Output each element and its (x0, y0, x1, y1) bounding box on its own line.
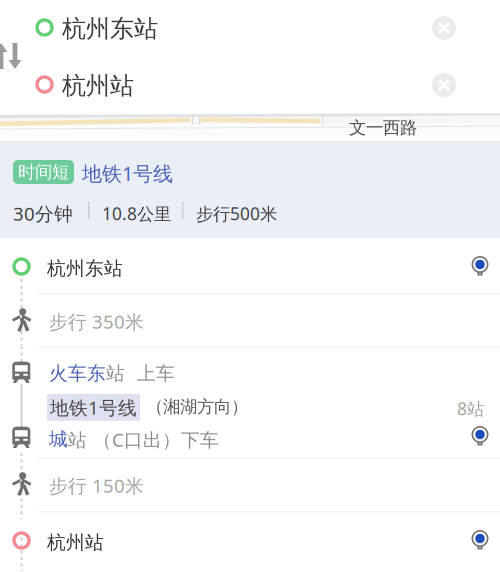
staticText: 杭州东站 (62, 14, 158, 43)
staticText: 8站 (457, 397, 484, 420)
staticText: （湘湖方向） (146, 396, 248, 417)
staticText: 文一西路 (349, 117, 417, 138)
staticText: 火车东 (49, 362, 106, 385)
staticText: 步行 150米 (49, 473, 144, 498)
button[interactable]: Clear (422, 6, 466, 50)
button[interactable]: 步行 350米 (0, 294, 500, 346)
button[interactable]: 杭州站 (0, 512, 500, 567)
staticText: 杭州东站 (47, 257, 123, 280)
staticText: 10.8公里 (102, 202, 171, 225)
button[interactable]: 杭州东站 (0, 0, 500, 56)
button[interactable]: Show on map (464, 249, 496, 285)
staticText: 杭州站 (47, 531, 104, 554)
staticText: 城 (49, 428, 68, 451)
staticText: 时间短 (18, 161, 69, 183)
button[interactable]: Swap origin and destination (0, 43, 20, 69)
staticText: 站 （C口出）下车 (68, 427, 219, 452)
button[interactable]: 杭州东站 (0, 238, 500, 293)
staticText: 步行500米 (196, 202, 277, 225)
staticText: 站 上车 (106, 362, 175, 385)
button[interactable]: 杭州站 (0, 57, 500, 113)
staticText: 地铁1号线 (50, 395, 137, 420)
button[interactable]: 火车东 (0, 347, 500, 457)
staticText: 步行 350米 (49, 309, 144, 334)
staticText: 30分钟 (13, 201, 73, 226)
button[interactable]: Clear (422, 63, 466, 107)
button[interactable]: Show on map (464, 419, 496, 455)
staticText: 杭州站 (62, 71, 134, 100)
button[interactable]: Show on map (464, 523, 496, 559)
staticText: 地铁1号线 (82, 160, 173, 187)
button[interactable]: 步行 150米 (0, 458, 500, 510)
